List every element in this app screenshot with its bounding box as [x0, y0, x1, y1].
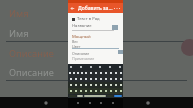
staticText: Примечание	[72, 56, 95, 61]
button[interactable]: Key	[68, 76, 73, 82]
button[interactable]: Key	[78, 76, 83, 82]
button[interactable]: Recents	[142, 97, 153, 108]
button[interactable]: Nav	[99, 101, 103, 105]
button[interactable]: Key	[80, 70, 84, 76]
button[interactable]: Key	[113, 76, 118, 82]
button[interactable]: Key	[118, 82, 123, 88]
button[interactable]: Key	[108, 70, 113, 76]
button[interactable]: Key	[84, 70, 88, 76]
button[interactable]: Key	[103, 88, 108, 94]
button[interactable]: Key	[68, 88, 73, 94]
staticText: Вес	[72, 39, 79, 44]
button[interactable]: Key	[83, 82, 88, 88]
button[interactable]: Key	[113, 82, 118, 88]
button[interactable]: Key	[68, 70, 72, 76]
button[interactable]: Key	[108, 88, 113, 94]
button[interactable]: Key	[83, 76, 88, 82]
button[interactable]: Key	[78, 88, 83, 94]
button[interactable]: Key	[108, 82, 113, 88]
staticText: Добавить за...	[78, 5, 113, 12]
staticText: Имя	[9, 27, 29, 40]
button[interactable]: Key	[83, 88, 88, 94]
button[interactable]: Key	[73, 76, 78, 82]
staticText: Мощный	[72, 34, 91, 40]
button[interactable]: Key	[88, 76, 93, 82]
button[interactable]: Key	[113, 88, 118, 94]
button[interactable]: Key	[93, 88, 98, 94]
button[interactable]: Back	[40, 97, 51, 108]
button[interactable]: Key	[76, 70, 80, 76]
button[interactable]: Key	[98, 82, 103, 88]
button[interactable]: Key	[103, 76, 108, 82]
button[interactable]: Key	[98, 70, 103, 76]
button[interactable]: Key	[113, 70, 118, 76]
button[interactable]: Key	[78, 82, 83, 88]
button[interactable]: Enter	[114, 95, 122, 97]
button[interactable]: Key	[88, 70, 93, 76]
button[interactable]: Key	[103, 70, 108, 76]
button[interactable]: Key	[93, 70, 98, 76]
button[interactable]: Key	[88, 88, 93, 94]
button[interactable]: Nav	[88, 101, 92, 105]
button[interactable]: Key	[93, 82, 98, 88]
staticText: Название	[72, 23, 92, 29]
button[interactable]: Key	[108, 76, 113, 82]
button[interactable]: Nav	[111, 101, 115, 105]
button[interactable]: Key	[118, 88, 123, 94]
button[interactable]: Key	[88, 82, 93, 88]
button[interactable]: Key	[98, 88, 103, 94]
button[interactable]: Key	[68, 82, 73, 88]
button[interactable]: Add	[181, 39, 193, 56]
staticText: Имя	[9, 7, 29, 20]
button[interactable]: Nav	[76, 101, 80, 105]
staticText: Текст в Ряд	[77, 16, 100, 22]
button[interactable]: Key	[73, 82, 78, 88]
button[interactable]: Space	[84, 95, 106, 97]
button[interactable]: Key	[73, 88, 78, 94]
button[interactable]: Emoji	[77, 95, 83, 97]
button[interactable]: Key	[98, 76, 103, 82]
button[interactable]: Home	[91, 97, 102, 108]
staticText: Описание	[9, 47, 54, 60]
staticText: Описание	[72, 51, 90, 56]
staticText: Описание	[9, 66, 54, 79]
button[interactable]: Key	[72, 70, 76, 76]
staticText: Цвет	[72, 44, 81, 49]
button[interactable]: Key	[118, 76, 123, 82]
button[interactable]: Key	[93, 76, 98, 82]
button[interactable]: Key	[118, 70, 123, 76]
button[interactable]: Key	[103, 82, 108, 88]
